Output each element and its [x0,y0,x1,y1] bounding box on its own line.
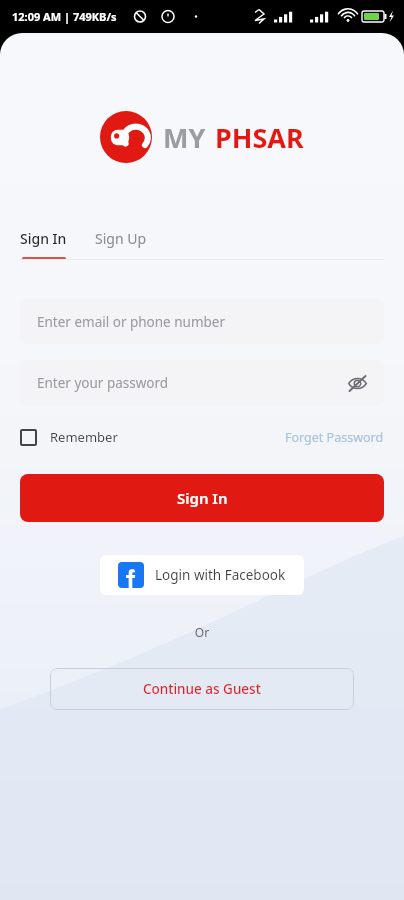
button[interactable]: Continue as Guest [50,668,354,710]
staticText: Sign Up [95,229,147,248]
staticText: Continue as Guest [143,680,261,698]
staticText: Remember [50,428,118,446]
staticText: Enter your password [37,374,169,392]
staticText: Enter email or phone number [37,313,226,331]
button[interactable]: Forget Password [285,429,384,446]
button[interactable]: Enter your password [20,360,384,405]
staticText: 12:09 AM | 749KB/s [12,9,117,24]
staticText: Forget Password [285,429,384,446]
staticText: Or [0,624,404,640]
staticText: Sign In [20,229,67,248]
staticText: Login with Facebook [155,566,286,584]
button[interactable]: Sign Up [95,229,147,260]
button[interactable]: Sign In [20,229,67,260]
staticText: MY [163,119,206,156]
staticText: Sign In [177,488,228,508]
button[interactable]: Remember [20,428,118,446]
staticText: PHSAR [215,119,304,156]
button[interactable]: Sign In [20,474,384,522]
button[interactable]: Show password [342,368,372,398]
button[interactable]: Login with Facebook [100,555,304,595]
button[interactable]: Enter email or phone number [20,299,384,344]
